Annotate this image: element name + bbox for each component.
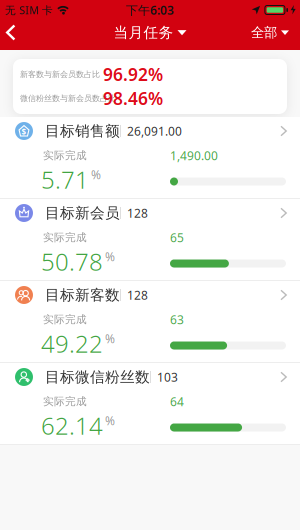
button[interactable]: 当月任务 (113, 23, 186, 41)
staticText: 49.22 (41, 328, 103, 359)
staticText: % (91, 167, 101, 182)
staticText: 128 (127, 287, 148, 303)
staticText: 128 (127, 205, 148, 221)
staticText: % (105, 413, 115, 428)
staticText: 实际完成 (43, 313, 87, 326)
staticText: 96.92% (103, 63, 163, 86)
staticText: 目标微信粉丝数 (45, 368, 150, 386)
staticText: 目标销售额 (45, 122, 120, 140)
staticText: 64 (170, 393, 184, 409)
staticText: 62.14 (41, 410, 103, 441)
staticText: 26,091.00 (127, 123, 182, 139)
staticText: 下午6:03 (126, 2, 174, 18)
staticText: 实际完成 (43, 149, 87, 162)
button[interactable]: $ (0, 117, 300, 198)
staticText: 63 (170, 311, 184, 327)
staticText: 目标新客数 (45, 286, 120, 304)
staticText: 无 SIM 卡 (5, 3, 53, 17)
button[interactable]: 目标新会员 (0, 199, 300, 280)
staticText: 实际完成 (43, 231, 87, 244)
staticText: $ (21, 127, 26, 137)
staticText: 50.78 (41, 246, 103, 277)
staticText: 全部 (251, 24, 277, 41)
staticText: 103 (157, 369, 178, 385)
button[interactable] (0, 24, 24, 40)
button[interactable]: 目标微信粉丝数 (0, 363, 300, 444)
staticText: 实际完成 (43, 395, 87, 408)
staticText: % (105, 331, 115, 346)
button[interactable]: 全部 (251, 24, 300, 41)
staticText: 微信粉丝数与新会员数占比 (20, 93, 116, 103)
staticText: 新客数与新会员数占比 (20, 69, 100, 79)
staticText: 当月任务 (113, 23, 173, 41)
staticText: 98.46% (103, 87, 163, 110)
staticText: 5.71 (41, 164, 89, 195)
staticText: 65 (170, 229, 184, 245)
staticText: % (105, 249, 115, 264)
staticText: 1,490.00 (170, 147, 218, 163)
staticText: 目标新会员 (45, 204, 120, 222)
button[interactable]: 目标新客数 (0, 281, 300, 362)
